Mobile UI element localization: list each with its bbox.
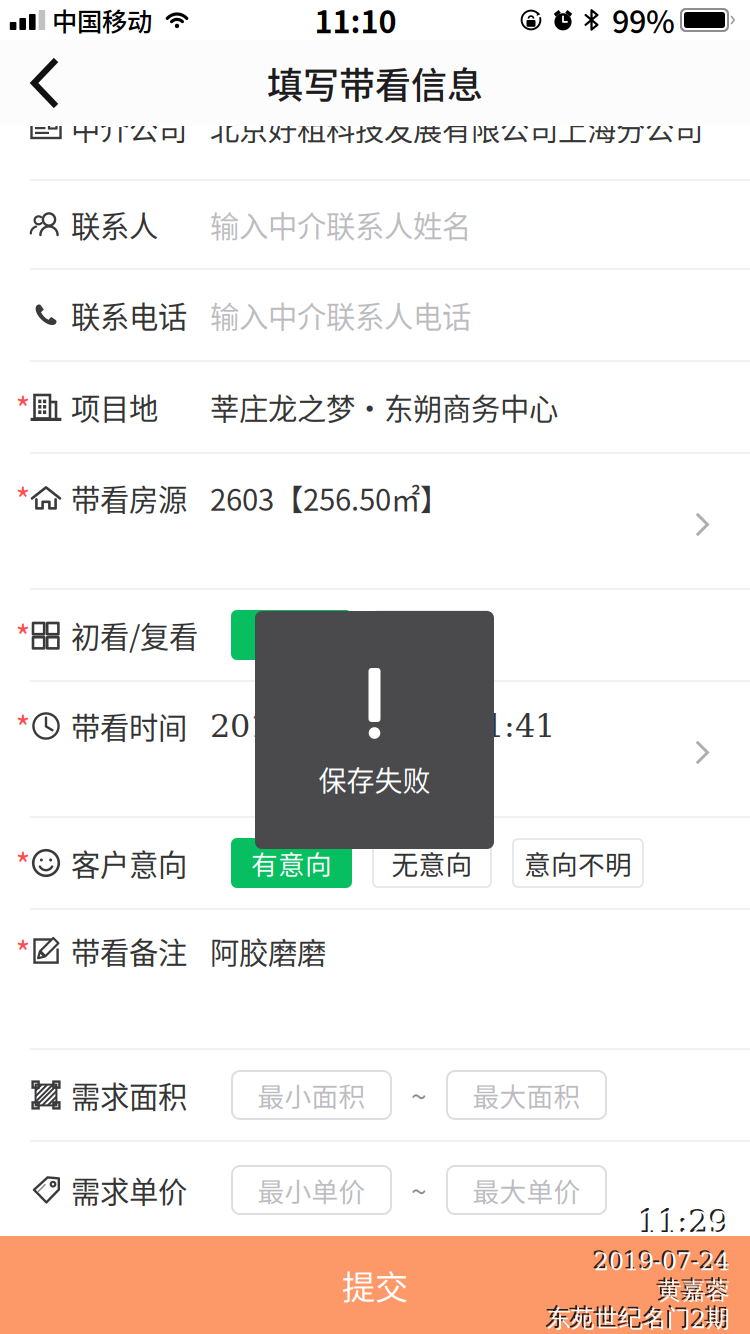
staticText: 意向不明	[524, 844, 632, 882]
staticText: 99%	[612, 0, 675, 42]
staticText: 2603【256.50㎡】	[210, 477, 449, 519]
staticText: *	[15, 475, 30, 521]
staticText: 莘庄龙之梦·东朔商务中心	[210, 386, 558, 428]
staticText: 带看房源	[71, 477, 187, 519]
staticText: 需求单价	[71, 1169, 187, 1211]
button[interactable]: 最大面积	[447, 1071, 606, 1119]
staticText: 有意向	[251, 844, 332, 882]
staticText: *	[15, 384, 30, 430]
staticText: 初看/复看	[71, 614, 198, 656]
staticText: 保存失败	[318, 759, 430, 799]
button[interactable]: 初看	[232, 611, 351, 659]
staticText: 中国移动	[52, 2, 152, 38]
staticText: 输入中介联系人姓名	[210, 203, 471, 246]
staticText: 客户意向	[71, 842, 187, 884]
staticText: 2019-07-23T16:01:41	[210, 707, 555, 745]
button[interactable]: *	[0, 454, 750, 588]
button[interactable]: 提交	[0, 1236, 750, 1334]
staticText: 联系人	[71, 203, 158, 246]
staticText: 阿胶磨磨	[210, 930, 326, 972]
staticText: 项目地	[71, 386, 158, 428]
staticText: 中介公司	[71, 106, 187, 149]
staticText: 11:29	[637, 1202, 728, 1240]
staticText: 11:29	[639, 1204, 730, 1242]
staticText: 东苑世纪名门2期	[545, 1302, 728, 1332]
staticText: 需求面积	[71, 1074, 187, 1116]
button[interactable]: 返回	[0, 40, 84, 126]
staticText: 北京好租科技发展有限公司上海分公司	[210, 106, 703, 149]
staticText: 带看备注	[71, 930, 187, 972]
staticText: 填写带看信息	[267, 57, 483, 109]
staticText: 最大面积	[472, 1076, 580, 1114]
staticText: 最小面积	[257, 1076, 365, 1114]
staticText: 黄嘉蓉	[658, 1276, 730, 1306]
staticText: 带看时间	[71, 705, 187, 747]
button[interactable]: *	[0, 682, 750, 816]
staticText: 2019-07-24	[592, 1246, 728, 1274]
button[interactable]: 最大单价	[447, 1166, 606, 1214]
button[interactable]: 意向不明	[513, 839, 643, 887]
staticText: ~	[411, 1075, 427, 1115]
staticText: 11:10	[314, 0, 396, 42]
staticText: 无意向	[391, 844, 472, 882]
button[interactable]: 有意向	[232, 839, 351, 887]
staticText: 提交	[342, 1261, 408, 1309]
button[interactable]: 最小面积	[232, 1071, 391, 1119]
staticText: 东苑世纪名门2期	[547, 1304, 730, 1334]
staticText: *	[15, 612, 30, 658]
staticText: 输入中介联系人电话	[210, 294, 471, 336]
staticText: 黄嘉蓉	[656, 1274, 728, 1304]
staticText: *	[15, 928, 30, 974]
staticText: 最大单价	[472, 1171, 580, 1209]
staticText: 联系电话	[71, 294, 187, 336]
staticText: *	[15, 840, 30, 886]
button[interactable]: 无意向	[373, 839, 491, 887]
staticText: *	[15, 703, 30, 749]
button[interactable]: 最小单价	[232, 1166, 391, 1214]
staticText: 2019-07-24	[594, 1248, 730, 1276]
staticText: ~	[411, 1170, 427, 1210]
staticText: 最小单价	[257, 1171, 365, 1209]
